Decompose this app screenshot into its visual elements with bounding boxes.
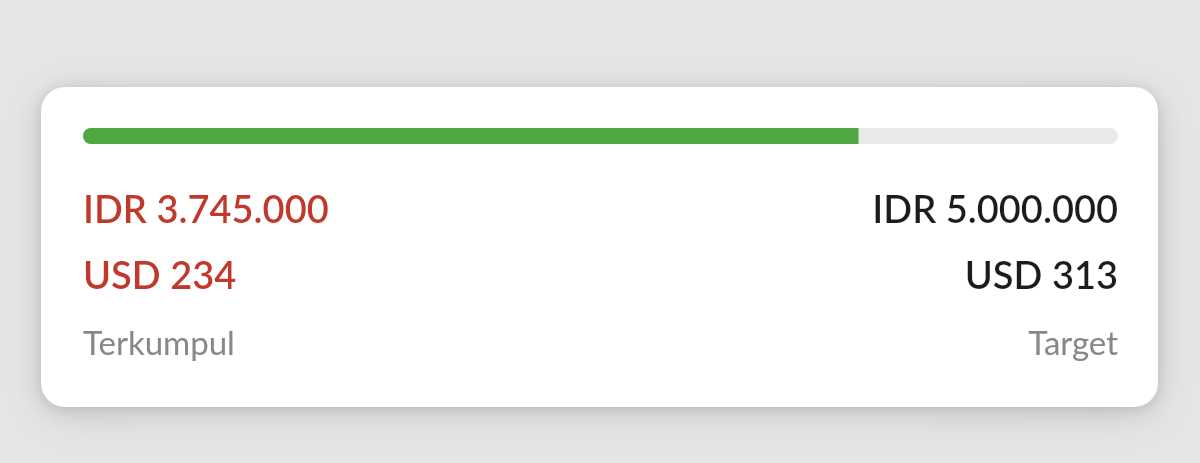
staticText: IDR 5.000.000 <box>872 185 1118 231</box>
other: Progress 75 percent <box>83 128 1118 144</box>
staticText: Target <box>1028 322 1118 362</box>
staticText: IDR 3.745.000 <box>83 185 329 231</box>
staticText: Terkumpul <box>83 322 235 362</box>
staticText: USD 234 <box>83 251 237 297</box>
button[interactable]: Progress 75 percent <box>41 87 1158 407</box>
staticText: USD 313 <box>964 251 1118 297</box>
